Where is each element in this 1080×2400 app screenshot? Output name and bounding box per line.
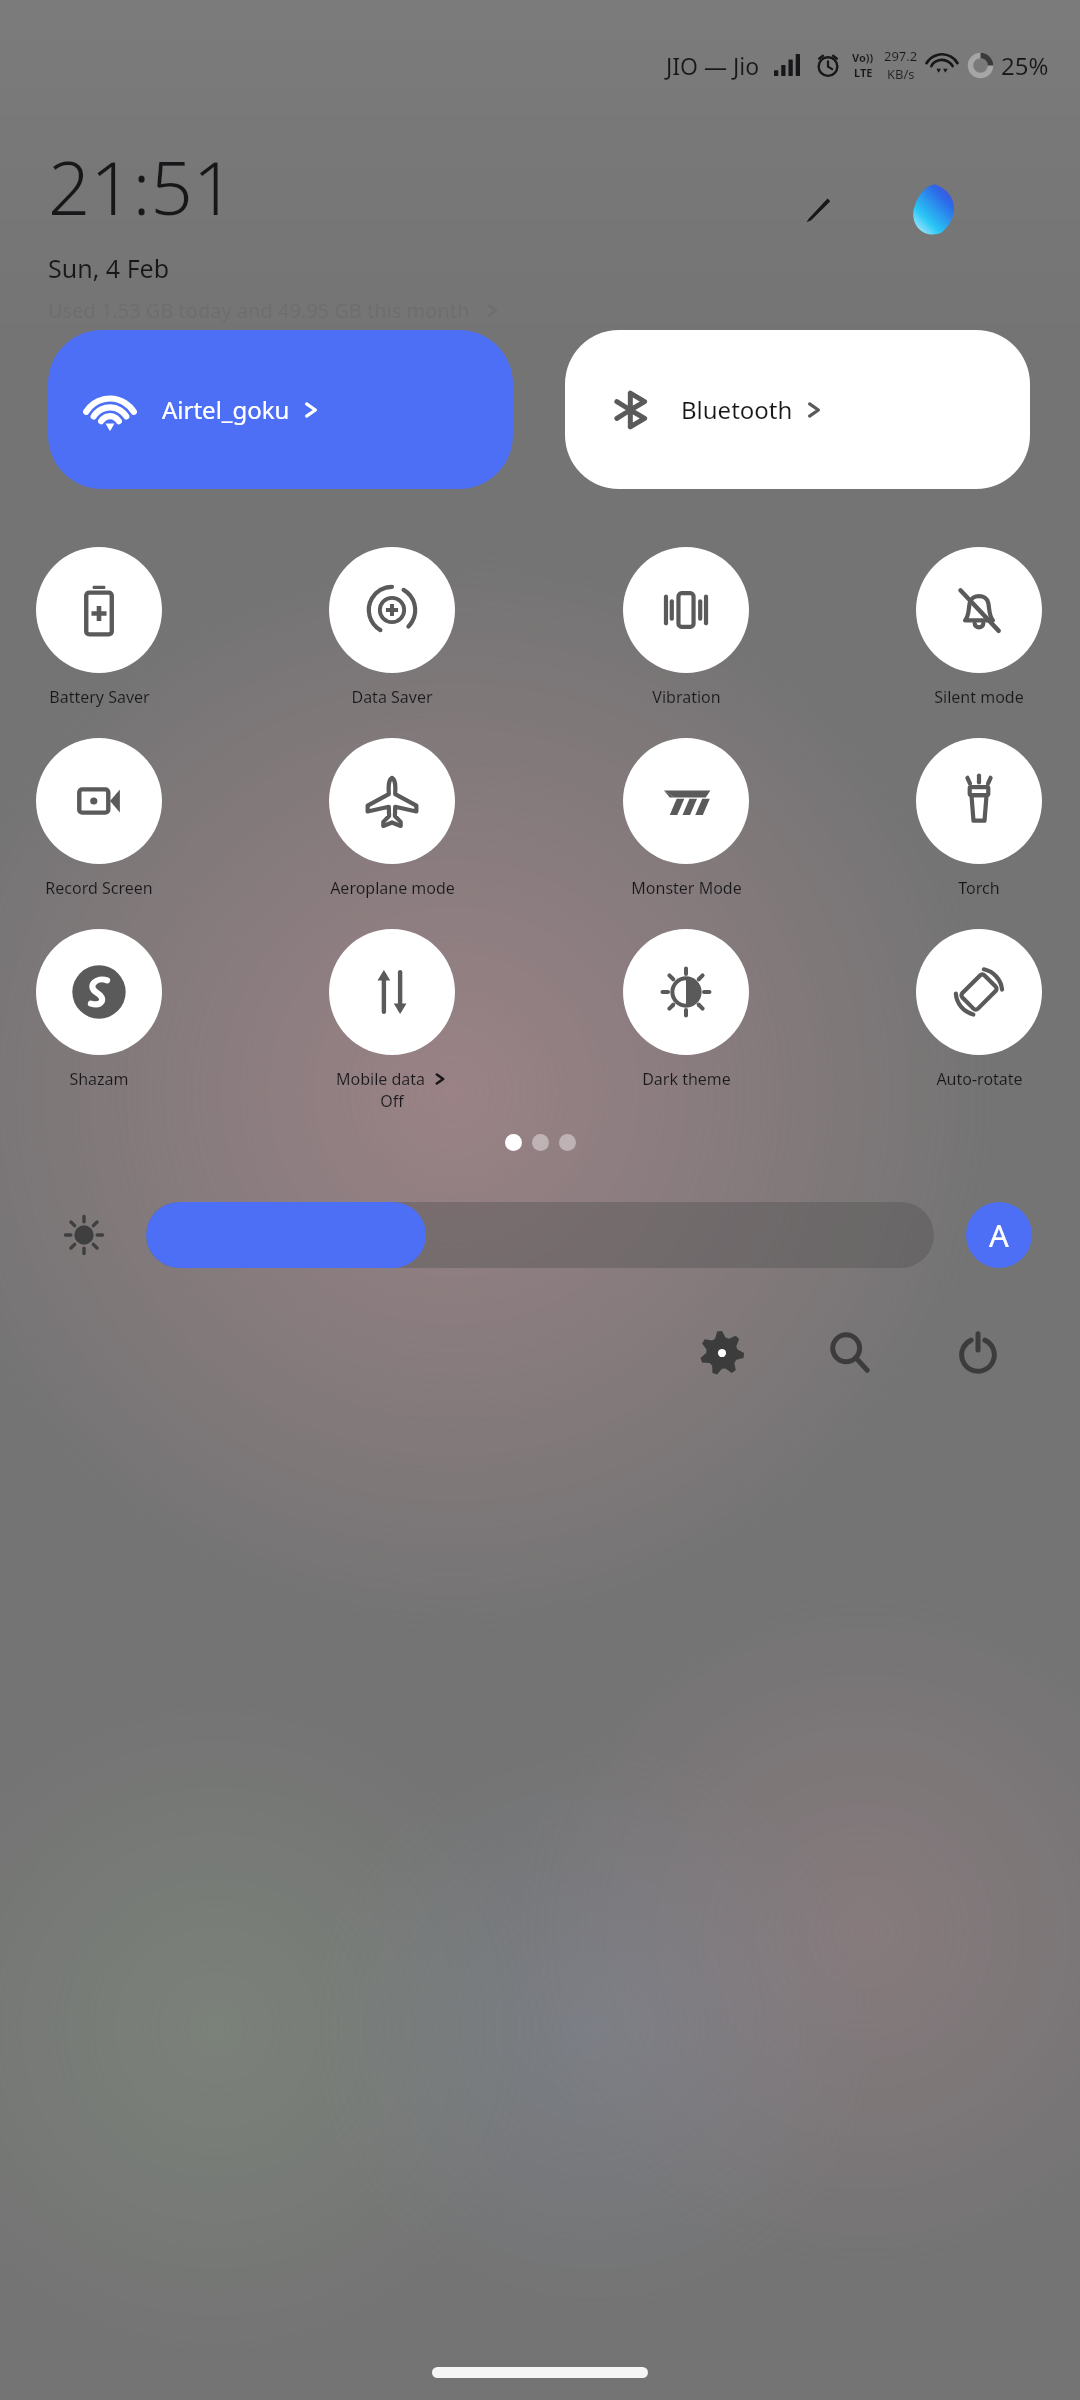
button[interactable]: Dark theme — [623, 929, 749, 1090]
button[interactable]: Bluetooth — [565, 330, 1030, 489]
staticText: Aeroplane mode — [330, 877, 455, 899]
button[interactable]: Aeroplane mode — [329, 738, 455, 899]
button[interactable]: Silent mode — [916, 547, 1042, 708]
staticText: Airtel_goku — [162, 393, 290, 426]
button[interactable]: Mobile data — [329, 929, 455, 1112]
button[interactable]: Shazam — [36, 929, 162, 1090]
staticText: Dark theme — [642, 1068, 731, 1090]
button[interactable]: Vibration — [623, 547, 749, 708]
staticText: Monster Mode — [631, 877, 742, 899]
staticText: KB/s — [887, 65, 915, 83]
staticText: Mobile data — [336, 1068, 426, 1090]
staticText: LTE — [854, 65, 873, 80]
button[interactable]: Airtel_goku — [48, 330, 513, 489]
staticText: Data Saver — [351, 686, 433, 708]
button[interactable]: Record Screen — [36, 738, 162, 899]
staticText: A — [989, 1214, 1009, 1256]
button[interactable]: User profile — [900, 174, 970, 244]
staticText: Auto-rotate — [936, 1068, 1023, 1090]
staticText: JIO — Jio — [666, 50, 760, 81]
button[interactable]: Brightness — [146, 1202, 934, 1268]
staticText: 21:51 — [48, 136, 236, 237]
staticText: Shazam — [69, 1068, 129, 1090]
staticText: 25% — [1001, 49, 1049, 82]
button[interactable]: Edit quick settings — [790, 182, 846, 238]
button[interactable]: Battery Saver — [36, 547, 162, 708]
staticText: Torch — [958, 877, 1000, 899]
button[interactable]: Settings — [676, 1307, 768, 1399]
button[interactable]: Data Saver — [329, 547, 455, 708]
button[interactable]: Monster Mode — [623, 738, 749, 899]
staticText: Vibration — [652, 686, 721, 708]
button[interactable]: Auto-rotate — [916, 929, 1042, 1090]
staticText: 297.2 — [884, 47, 918, 65]
staticText: Sun, 4 Feb — [48, 251, 170, 285]
button[interactable]: Torch — [916, 738, 1042, 899]
staticText: Battery Saver — [49, 686, 150, 708]
button[interactable]: Search — [804, 1307, 896, 1399]
staticText: Record Screen — [45, 877, 153, 899]
staticText: Silent mode — [934, 686, 1024, 708]
staticText: Bluetooth — [681, 393, 793, 426]
button[interactable]: Power — [932, 1307, 1024, 1399]
button[interactable]: Auto brightness — [966, 1202, 1032, 1268]
staticText: Vo)) — [852, 50, 874, 65]
staticText: Off — [380, 1090, 404, 1112]
